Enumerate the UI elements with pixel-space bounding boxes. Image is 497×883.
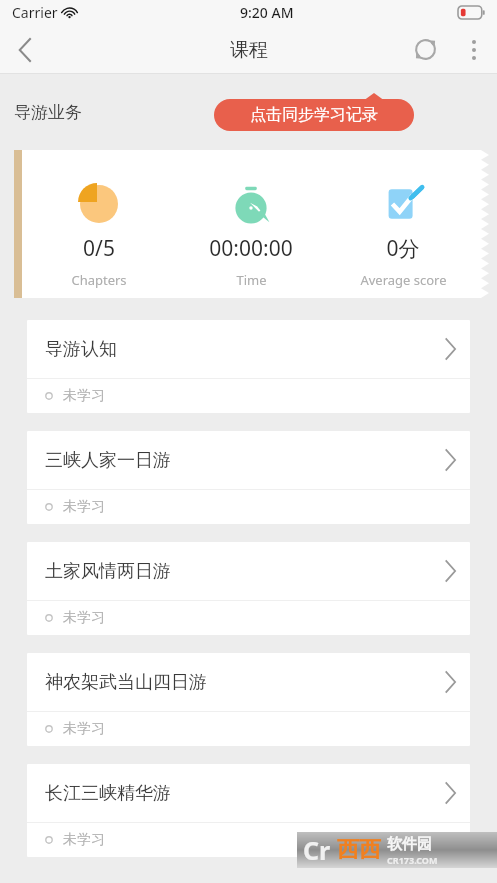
staticText: 西西 [337, 836, 381, 864]
staticText: 导游业务 [14, 102, 82, 123]
staticText: 未学习 [63, 609, 105, 627]
button[interactable]: 导游认知 [27, 320, 470, 413]
staticText: 9:20 AM [240, 3, 294, 22]
button[interactable]: More options [451, 25, 497, 74]
staticText: 神农架武当山四日游 [45, 671, 207, 694]
staticText: 三峡人家一日游 [45, 449, 171, 472]
staticText: Carrier [12, 3, 58, 22]
staticText: CR173.COM [387, 854, 438, 866]
button[interactable]: Sync [399, 25, 451, 74]
staticText: 未学习 [63, 831, 105, 849]
button[interactable]: 神农架武当山四日游 [27, 653, 470, 746]
staticText: Chapters [71, 271, 127, 289]
staticText: 课程 [230, 38, 268, 62]
button[interactable]: 三峡人家一日游 [27, 431, 470, 524]
staticText: 0/5 [83, 234, 115, 263]
staticText: 0分 [386, 234, 420, 263]
staticText: Average score [360, 271, 447, 289]
staticText: Time [236, 271, 267, 289]
button[interactable]: Back [0, 25, 50, 74]
staticText: 未学习 [63, 498, 105, 516]
staticText: 点击同步学习记录 [250, 105, 378, 125]
button[interactable]: 长江三峡精华游 [27, 764, 470, 857]
staticText: 00:00:00 [209, 234, 293, 263]
button[interactable]: 点击同步学习记录 [214, 93, 414, 131]
staticText: 土家风情两日游 [45, 560, 171, 583]
staticText: 长江三峡精华游 [45, 782, 171, 805]
staticText: 未学习 [63, 720, 105, 738]
staticText: Cr [303, 833, 331, 867]
staticText: 软件园 [387, 835, 432, 854]
button[interactable]: 土家风情两日游 [27, 542, 470, 635]
staticText: 导游认知 [45, 338, 117, 361]
staticText: 未学习 [63, 387, 105, 405]
